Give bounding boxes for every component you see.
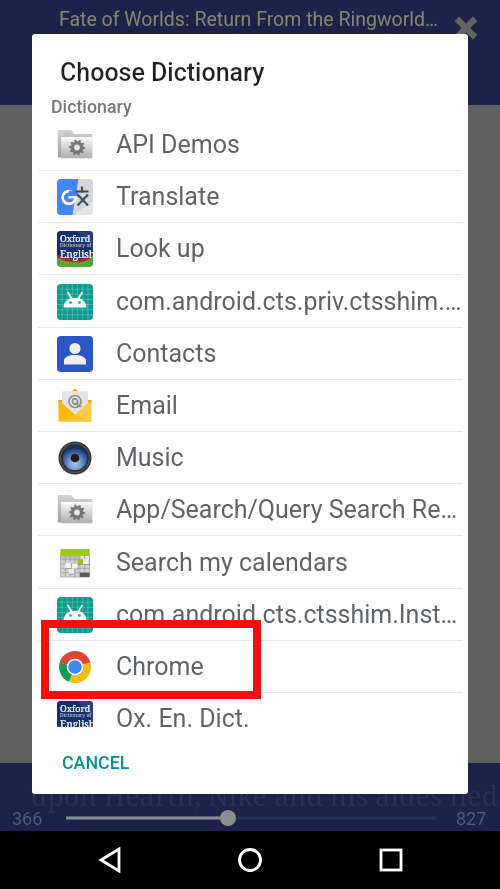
staticText: English: [60, 247, 93, 261]
staticText: com.android.cts.priv.ctsshim.…: [116, 287, 462, 316]
staticText: Choose Dictionary: [60, 58, 265, 87]
staticText: 827: [456, 808, 487, 829]
staticText: Dictionary of: [60, 712, 92, 719]
staticText: Translate: [116, 182, 220, 211]
staticText: Look up: [116, 234, 205, 263]
button[interactable]: Oxford: [32, 223, 468, 275]
staticText: Oxford: [60, 702, 91, 714]
button[interactable]: Close: [450, 12, 482, 44]
staticText: CANCEL: [62, 752, 130, 773]
staticText: Chrome: [116, 652, 204, 681]
staticText: 366: [12, 808, 43, 829]
staticText: Fate of Worlds: Return From the Ringworl…: [59, 8, 439, 31]
staticText: upon Hearth, Nike and his aides fled: [30, 777, 499, 814]
button[interactable]: Translate: [32, 171, 468, 223]
staticText: Email: [116, 391, 178, 420]
staticText: com.android.cts.ctsshim.Inst…: [116, 600, 458, 629]
button[interactable]: Back: [85, 835, 135, 885]
button[interactable]: Email: [32, 380, 468, 432]
staticText: API Demos: [116, 130, 240, 159]
staticText: Dictionary: [51, 96, 132, 117]
button[interactable]: API Demos: [32, 119, 468, 171]
button[interactable]: Contacts: [32, 328, 468, 380]
staticText: English: [60, 717, 93, 727]
button[interactable]: Chrome: [32, 641, 468, 693]
staticText: Oxford: [60, 232, 91, 244]
button[interactable]: App/Search/Query Search Re…: [32, 484, 468, 536]
button[interactable]: com.android.cts.priv.ctsshim.…: [32, 276, 468, 328]
button[interactable]: Search my calendars: [32, 537, 468, 589]
button[interactable]: Music: [32, 432, 468, 484]
staticText: Contacts: [116, 339, 217, 368]
staticText: Dictionary of: [60, 242, 92, 249]
button[interactable]: Oxford: [32, 693, 468, 727]
staticText: Search my calendars: [116, 548, 348, 577]
button[interactable]: CANCEL: [46, 742, 146, 783]
button[interactable]: com.android.cts.ctsshim.Inst…: [32, 589, 468, 641]
button[interactable]: Home: [225, 835, 275, 885]
staticText: Ox. En. Dict.: [116, 704, 250, 727]
staticText: Music: [116, 443, 184, 472]
staticText: App/Search/Query Search Re…: [116, 495, 458, 524]
button[interactable]: Recents: [366, 835, 416, 885]
